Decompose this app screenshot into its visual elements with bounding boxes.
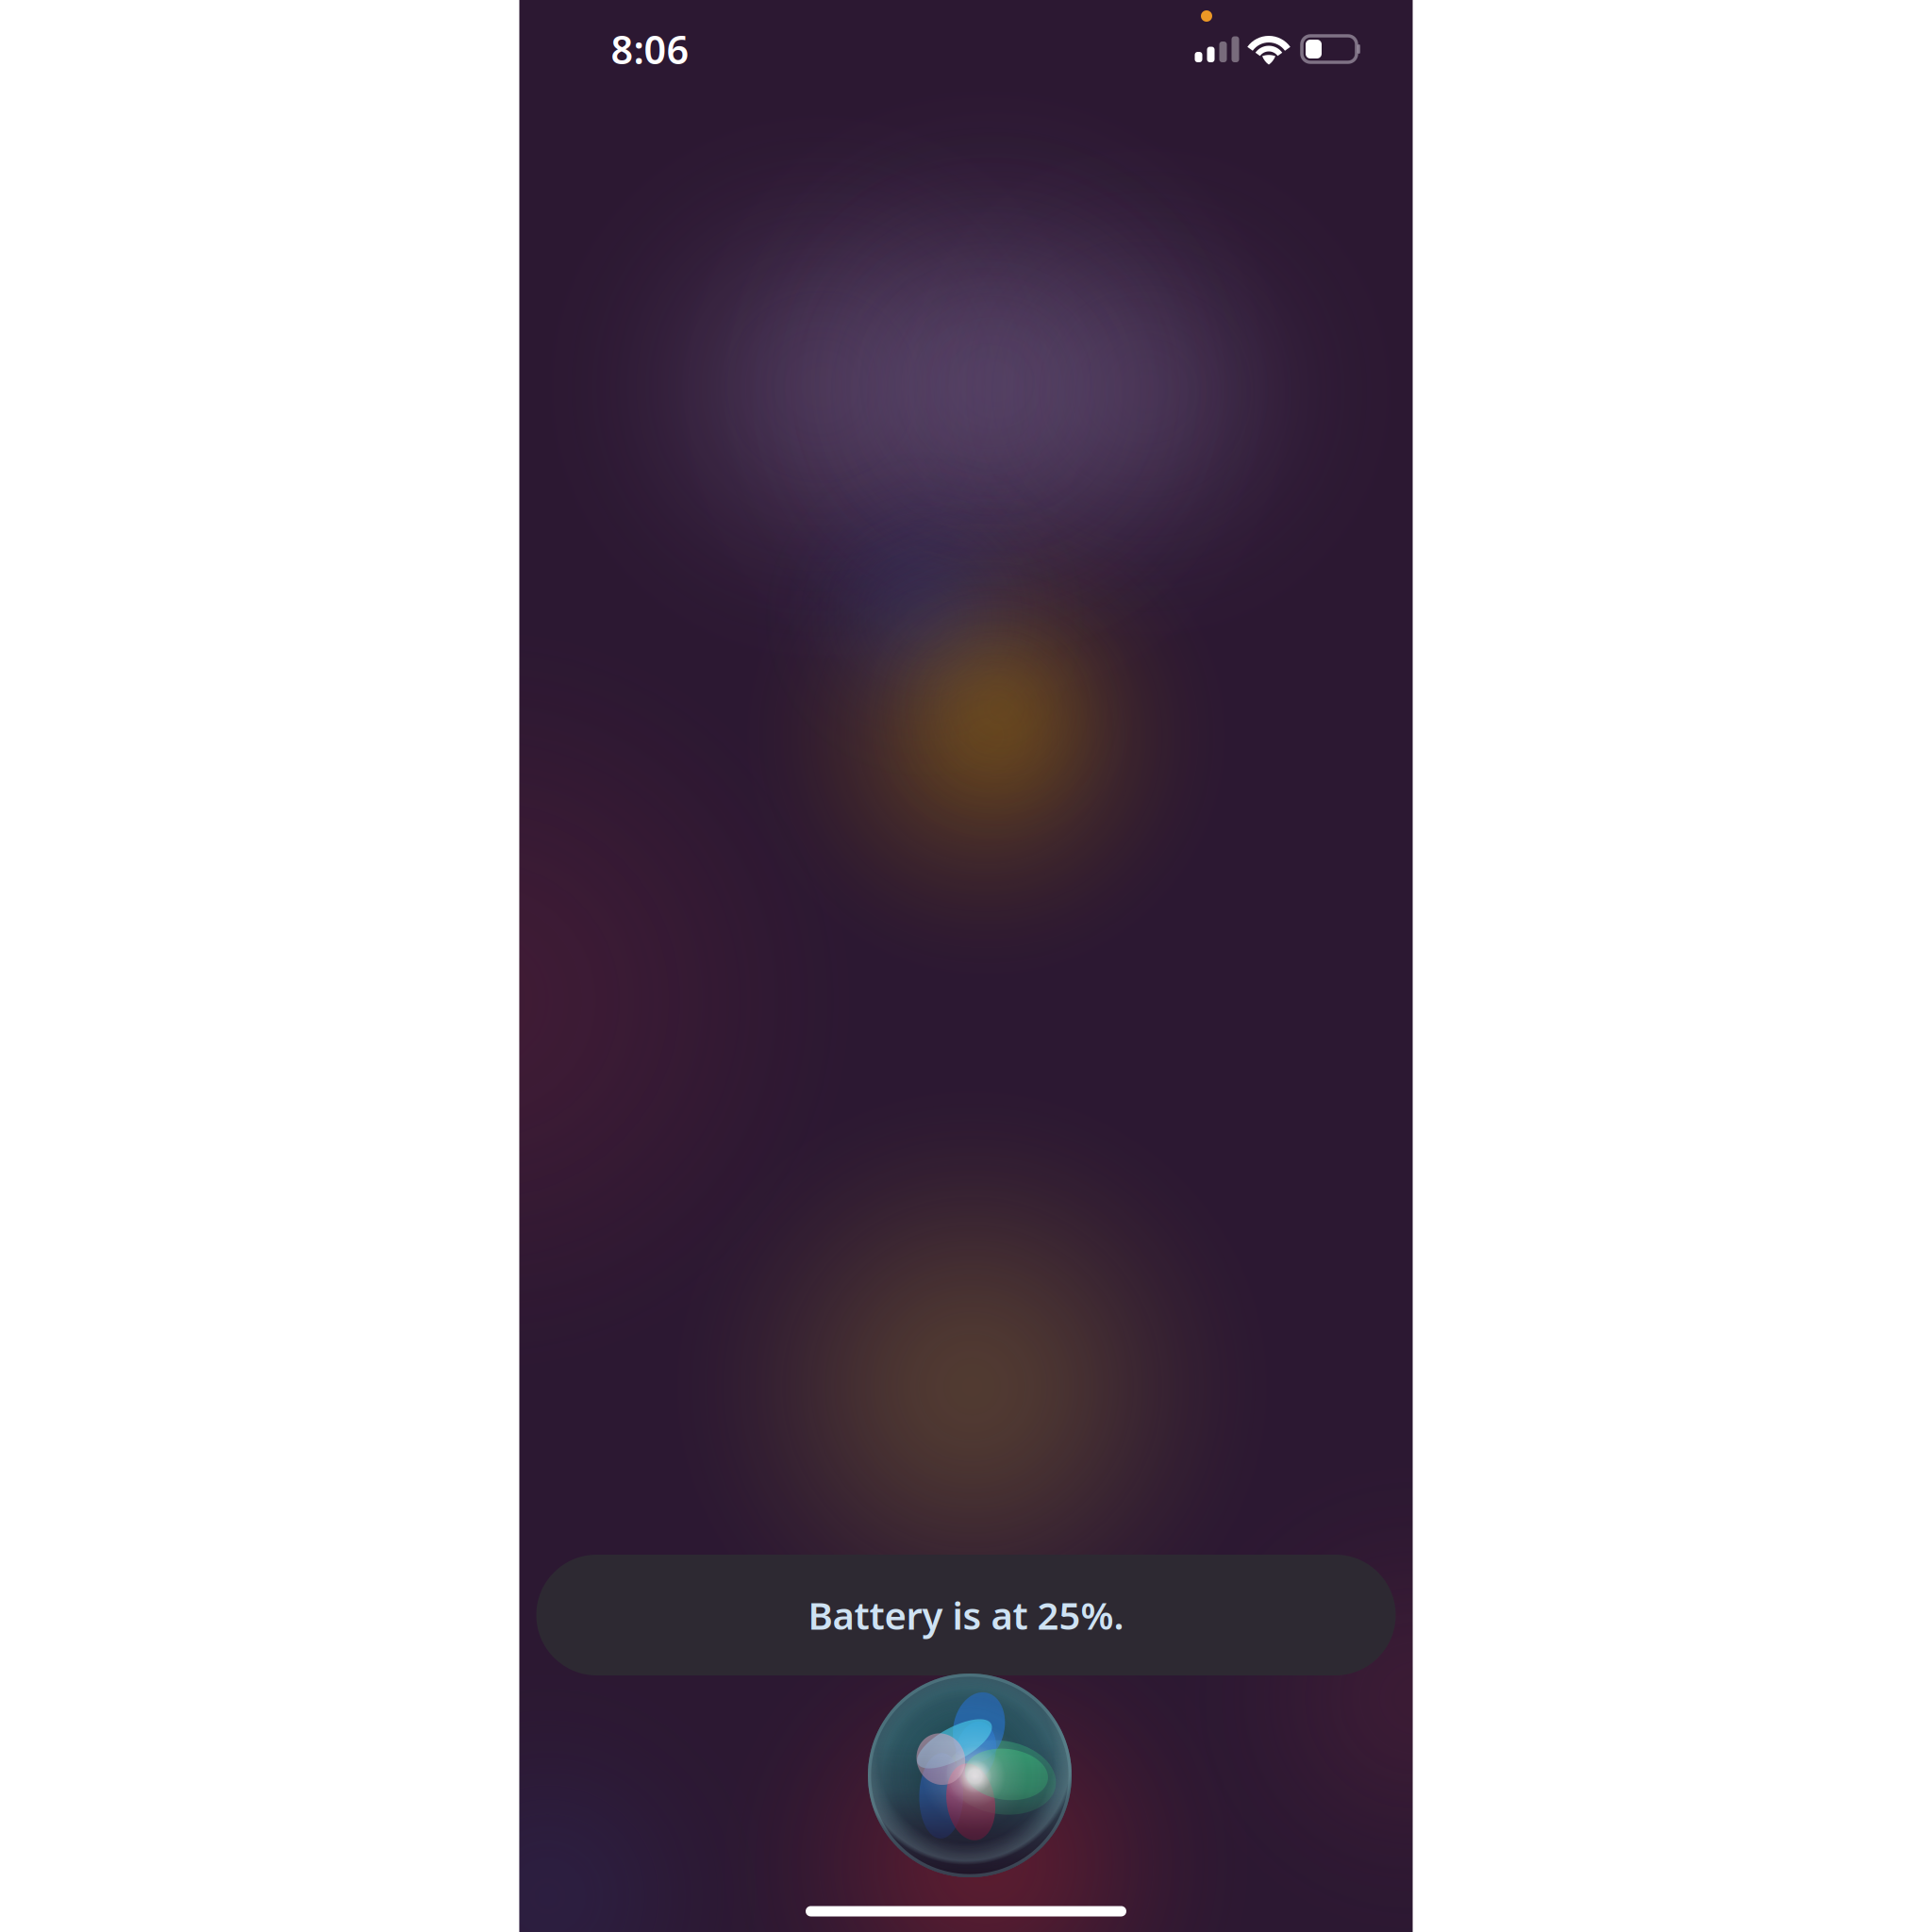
staticText: Battery is at 25%.	[808, 1590, 1124, 1640]
button[interactable]: Battery is at 25%.	[536, 1555, 1396, 1675]
staticText: 8:06	[611, 23, 689, 75]
button[interactable]: Siri	[868, 1674, 1072, 1877]
